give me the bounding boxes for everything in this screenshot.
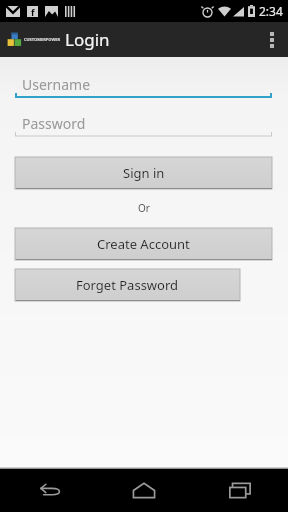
staticText: Sign in — [123, 164, 165, 182]
button[interactable]: Recent apps — [192, 468, 288, 512]
button[interactable]: Home — [96, 468, 192, 512]
button[interactable]: More options — [256, 22, 288, 57]
button[interactable]: Forget Password — [15, 269, 240, 301]
staticText: Or — [0, 201, 288, 215]
button[interactable]: Back — [0, 468, 96, 512]
staticText: Forget Password — [76, 276, 179, 294]
staticText: f — [31, 6, 35, 17]
staticText: Create Account — [97, 235, 190, 253]
staticText: CUSTOMERPOWER — [24, 37, 61, 42]
staticText: 2:34 — [259, 3, 283, 19]
button[interactable]: Username — [15, 71, 272, 101]
button[interactable]: Sign in — [15, 157, 272, 189]
button[interactable]: Password — [15, 110, 272, 140]
staticText: Username — [22, 75, 91, 94]
staticText: Login — [65, 28, 110, 51]
staticText: Password — [22, 114, 86, 133]
button[interactable]: Create Account — [15, 228, 272, 260]
